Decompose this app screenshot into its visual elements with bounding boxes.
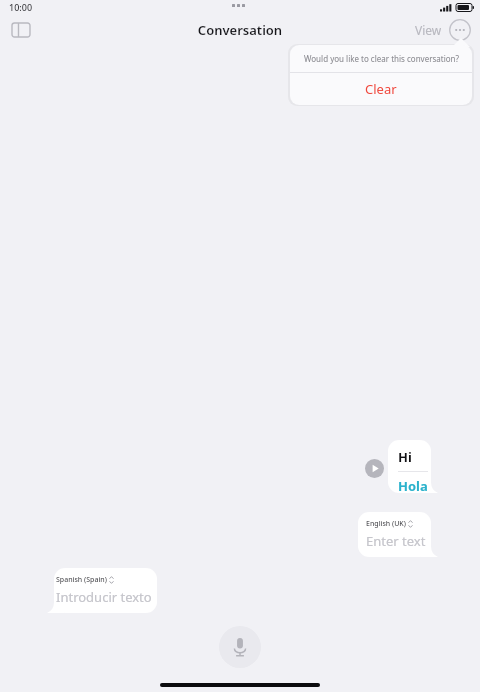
button[interactable]: English (UK) [358, 512, 438, 557]
staticText: 10:00 [9, 1, 33, 13]
button[interactable]: Spanish (Spain) [47, 568, 157, 613]
button[interactable]: Show sidebar [8, 18, 34, 42]
staticText: Would you like to clear this conversatio… [304, 53, 459, 64]
staticText: Hi [398, 448, 412, 466]
staticText: View [415, 22, 442, 38]
staticText: Enter text [366, 532, 426, 550]
button[interactable]: Play translation [365, 459, 384, 478]
button[interactable]: Record speech [219, 626, 261, 668]
staticText: Spanish (Spain) [56, 575, 107, 585]
staticText: Hola [398, 477, 428, 495]
button[interactable]: Multitasking controls [232, 4, 245, 7]
staticText: Conversation [0, 21, 480, 39]
staticText: Introducir texto [56, 588, 152, 606]
button[interactable]: More options [449, 19, 471, 41]
button[interactable]: View [408, 18, 448, 42]
staticText: English (UK) [366, 519, 406, 529]
button[interactable]: Clear [290, 73, 472, 105]
staticText: Clear [365, 80, 397, 98]
